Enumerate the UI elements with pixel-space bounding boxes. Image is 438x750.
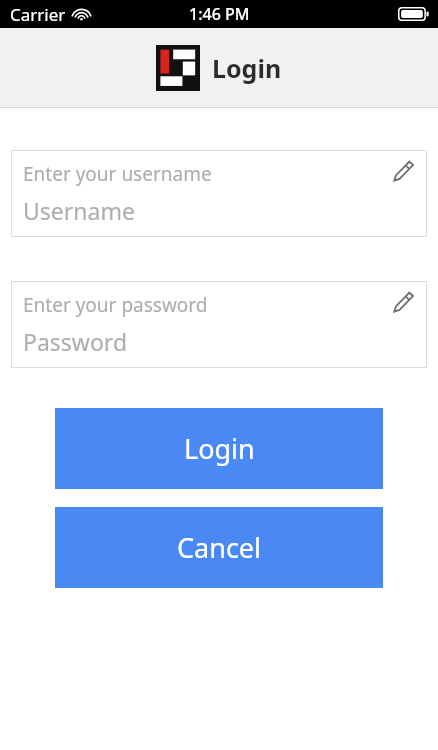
button[interactable]: Login — [55, 408, 383, 489]
button[interactable]: Cancel — [55, 507, 383, 588]
button[interactable]: Enter your password — [11, 281, 427, 368]
other: Edit — [391, 160, 415, 184]
staticText: Password — [23, 326, 128, 357]
staticText: Login — [212, 51, 282, 85]
staticText: Cancel — [177, 529, 262, 566]
button[interactable]: Enter your username — [11, 150, 427, 237]
staticText: Carrier — [10, 3, 66, 26]
other: Edit — [391, 291, 415, 315]
staticText: Enter your username — [23, 161, 212, 187]
staticText: Login — [184, 430, 255, 467]
staticText: 1:46 PM — [189, 3, 250, 25]
staticText: Enter your password — [23, 292, 208, 318]
staticText: Username — [23, 195, 135, 226]
